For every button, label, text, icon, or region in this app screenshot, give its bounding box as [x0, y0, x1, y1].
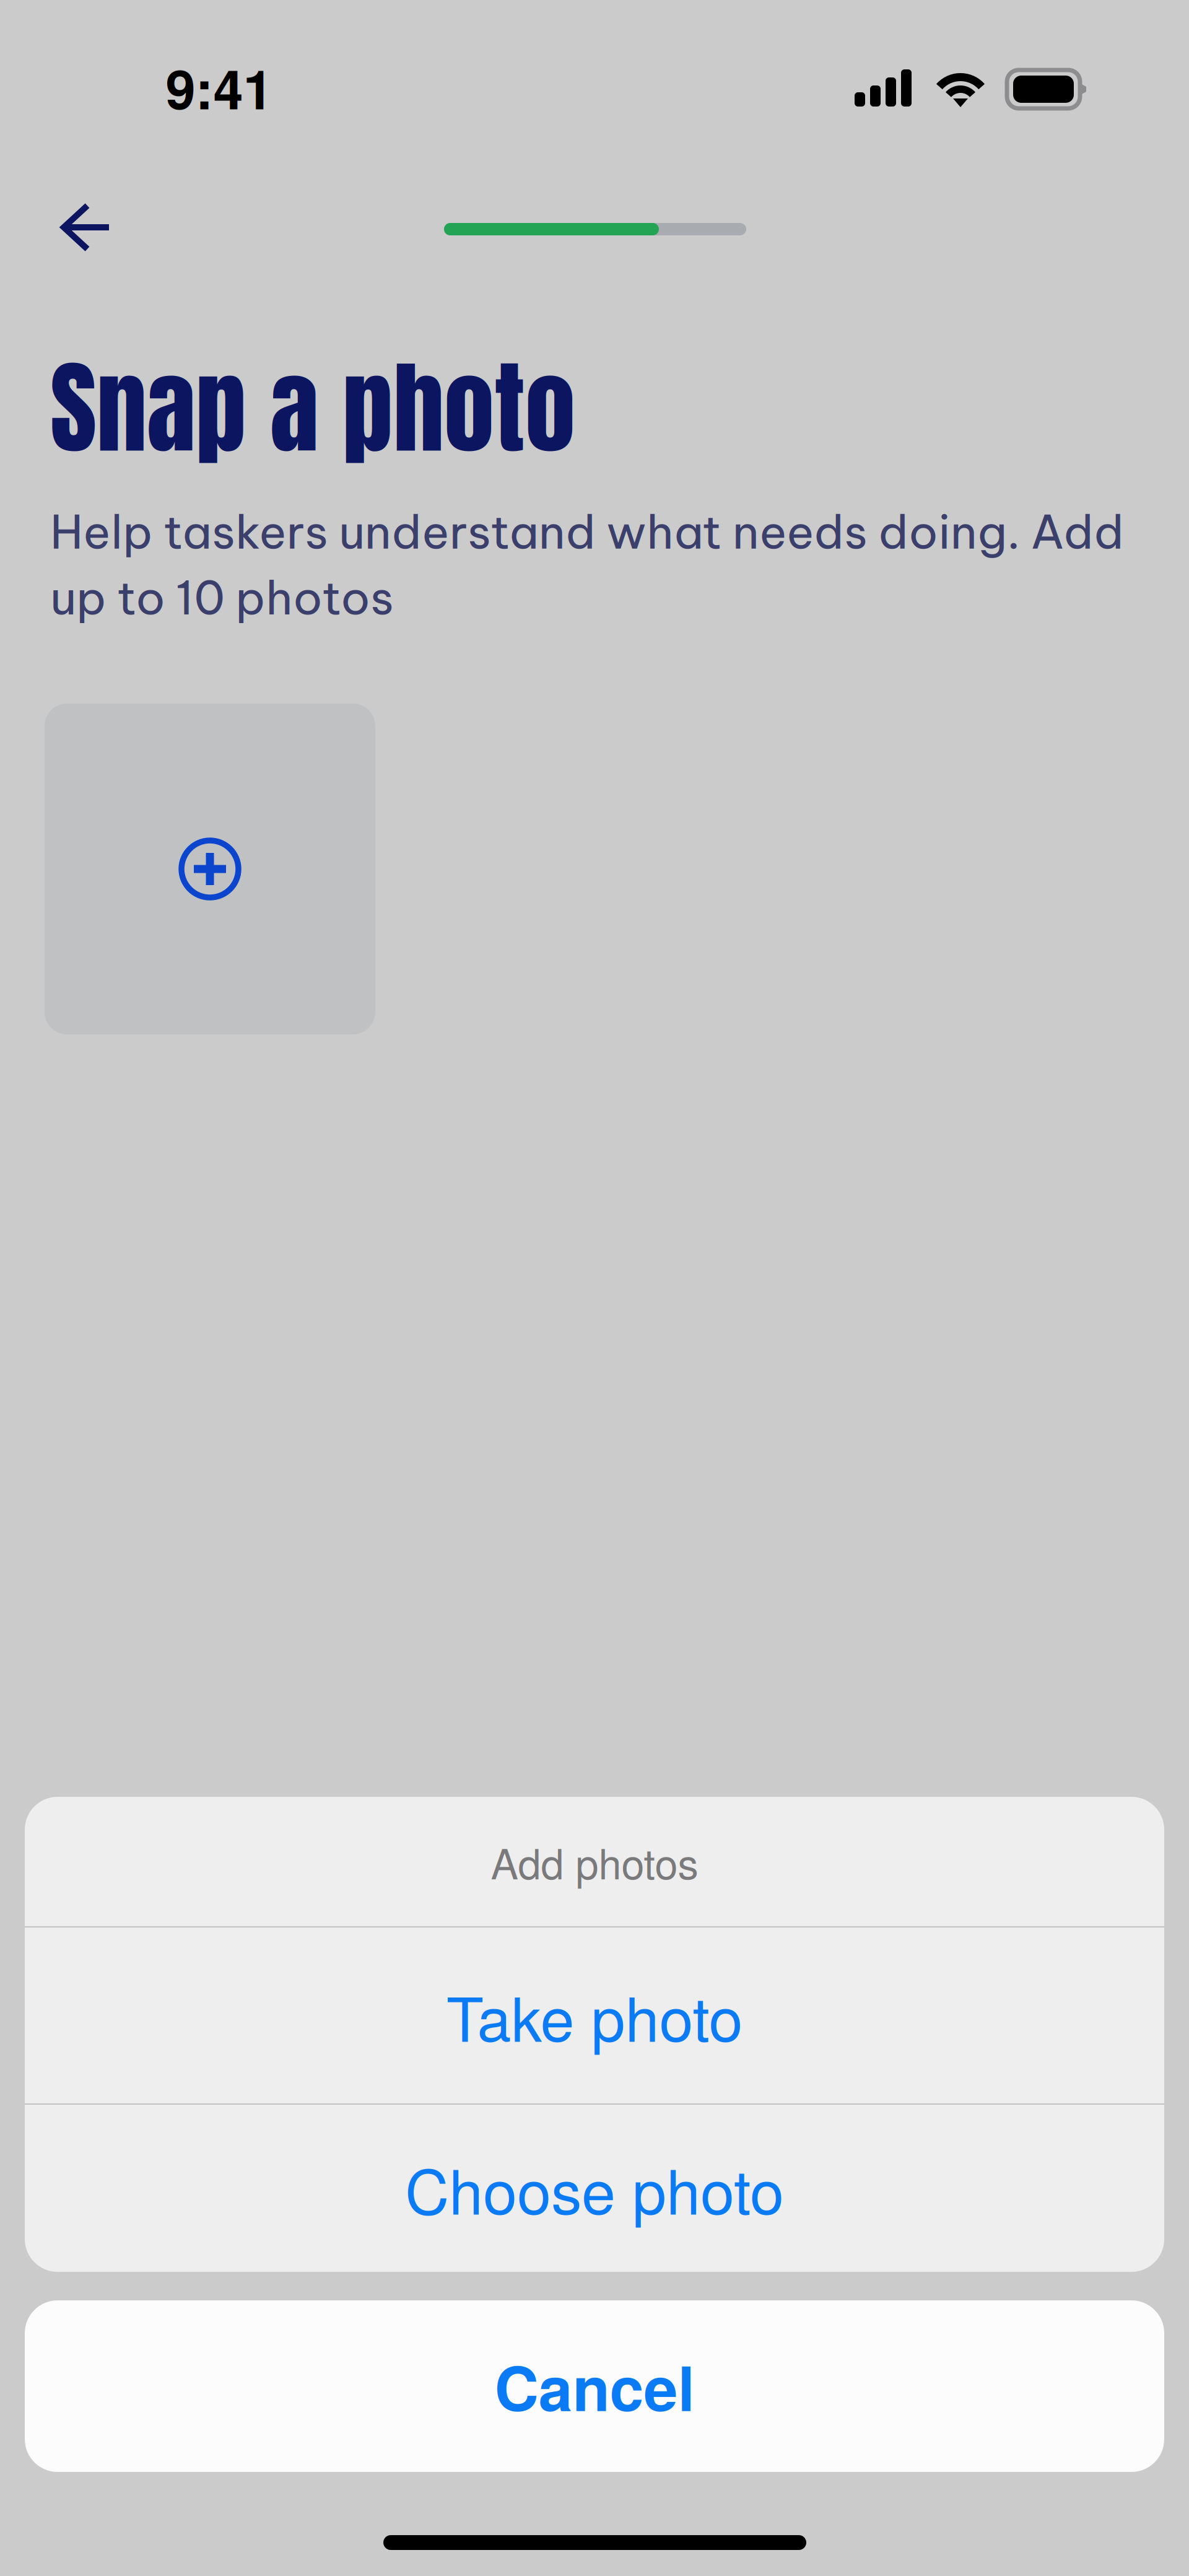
button[interactable]: Add photo [45, 704, 375, 1034]
staticText: Choose photo [405, 2145, 784, 2232]
button[interactable]: Take photo [25, 1928, 1164, 2103]
staticText: Take photo [446, 1972, 743, 2059]
staticText: Cancel [494, 2342, 695, 2430]
staticText: Snap a photo [50, 332, 575, 484]
button[interactable]: Back [39, 181, 132, 274]
button[interactable]: Choose photo [25, 2105, 1164, 2272]
staticText: 9:41 [166, 49, 273, 126]
button[interactable]: Cancel [25, 2300, 1164, 2472]
staticText: Add photos [491, 1832, 698, 1891]
staticText: Help taskers understand what needs doing… [50, 502, 1124, 627]
